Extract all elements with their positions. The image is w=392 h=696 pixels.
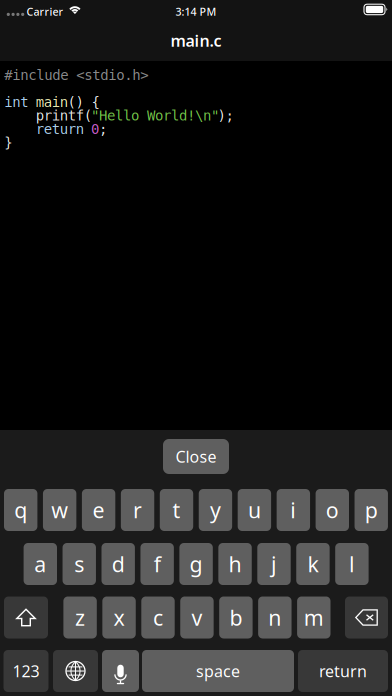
staticText: main.c <box>170 30 221 51</box>
button[interactable]: v <box>180 596 214 638</box>
staticText: g <box>190 550 203 578</box>
button[interactable]: u <box>238 489 271 531</box>
staticText: d <box>112 550 125 578</box>
staticText: k <box>307 550 318 578</box>
staticText: t <box>172 496 180 524</box>
button[interactable]: r <box>121 489 154 531</box>
button[interactable]: h <box>218 543 252 585</box>
button[interactable]: d <box>101 543 135 585</box>
staticText: n <box>268 603 281 632</box>
button[interactable]: 123 <box>3 650 48 692</box>
staticText: Carrier <box>26 4 63 19</box>
staticText: return <box>319 660 367 682</box>
staticText: int <box>4 94 28 110</box>
staticText: 123 <box>12 660 39 682</box>
button[interactable]: b <box>219 596 253 638</box>
button[interactable]: Dictation <box>102 650 139 692</box>
staticText: printf( <box>36 108 92 124</box>
staticText: r <box>133 496 142 524</box>
staticText: f <box>154 550 161 578</box>
staticText: c <box>153 603 163 632</box>
staticText: h <box>228 550 241 578</box>
button[interactable]: return <box>298 650 388 692</box>
button[interactable]: Next keyboard <box>53 650 98 692</box>
staticText: y <box>210 496 221 524</box>
staticText: s <box>74 550 84 578</box>
button[interactable]: space <box>142 650 294 692</box>
staticText: 3:14 PM <box>175 4 216 19</box>
button[interactable]: l <box>335 543 369 585</box>
staticText: o <box>326 496 339 524</box>
staticText: () { <box>67 94 99 110</box>
staticText: m <box>304 603 324 632</box>
staticText: w <box>51 496 68 524</box>
button[interactable]: g <box>179 543 213 585</box>
button[interactable]: a <box>24 543 57 585</box>
staticText: x <box>113 603 124 632</box>
staticText: e <box>93 496 105 524</box>
staticText: b <box>229 603 242 632</box>
staticText: i <box>290 496 296 524</box>
staticText: ; <box>99 121 107 137</box>
button[interactable]: Delete <box>345 596 388 638</box>
staticText: #include <stdio.h> <box>4 67 148 83</box>
button[interactable]: y <box>199 489 232 531</box>
staticText: p <box>365 496 378 524</box>
button[interactable]: Shift <box>4 596 48 638</box>
staticText: a <box>34 550 46 578</box>
button[interactable]: e <box>82 489 115 531</box>
staticText: 0 <box>91 121 99 137</box>
staticText: q <box>14 496 27 524</box>
button[interactable]: t <box>160 489 193 531</box>
button[interactable]: n <box>258 596 291 638</box>
button[interactable]: j <box>257 543 291 585</box>
staticText: } <box>4 135 12 151</box>
staticText: u <box>248 496 261 524</box>
button[interactable]: k <box>296 543 330 585</box>
button[interactable]: p <box>354 489 388 531</box>
button[interactable]: m <box>297 596 330 638</box>
staticText: ); <box>217 108 233 124</box>
staticText: v <box>191 603 202 632</box>
button[interactable]: c <box>141 596 175 638</box>
button[interactable]: i <box>277 489 310 531</box>
staticText: main <box>36 94 68 110</box>
staticText: space <box>196 660 240 682</box>
staticText: Close <box>175 446 216 467</box>
button[interactable]: w <box>43 489 76 531</box>
staticText: return <box>36 121 84 137</box>
staticText: "Hello World!\n" <box>91 108 219 124</box>
button[interactable]: z <box>63 596 97 638</box>
button[interactable]: Close <box>163 439 229 474</box>
staticText: l <box>349 550 355 578</box>
button[interactable]: q <box>4 489 37 531</box>
button[interactable]: o <box>316 489 349 531</box>
button[interactable]: f <box>140 543 174 585</box>
staticText: j <box>271 550 277 578</box>
button[interactable]: x <box>102 596 136 638</box>
staticText: z <box>75 603 85 632</box>
button[interactable]: s <box>62 543 96 585</box>
